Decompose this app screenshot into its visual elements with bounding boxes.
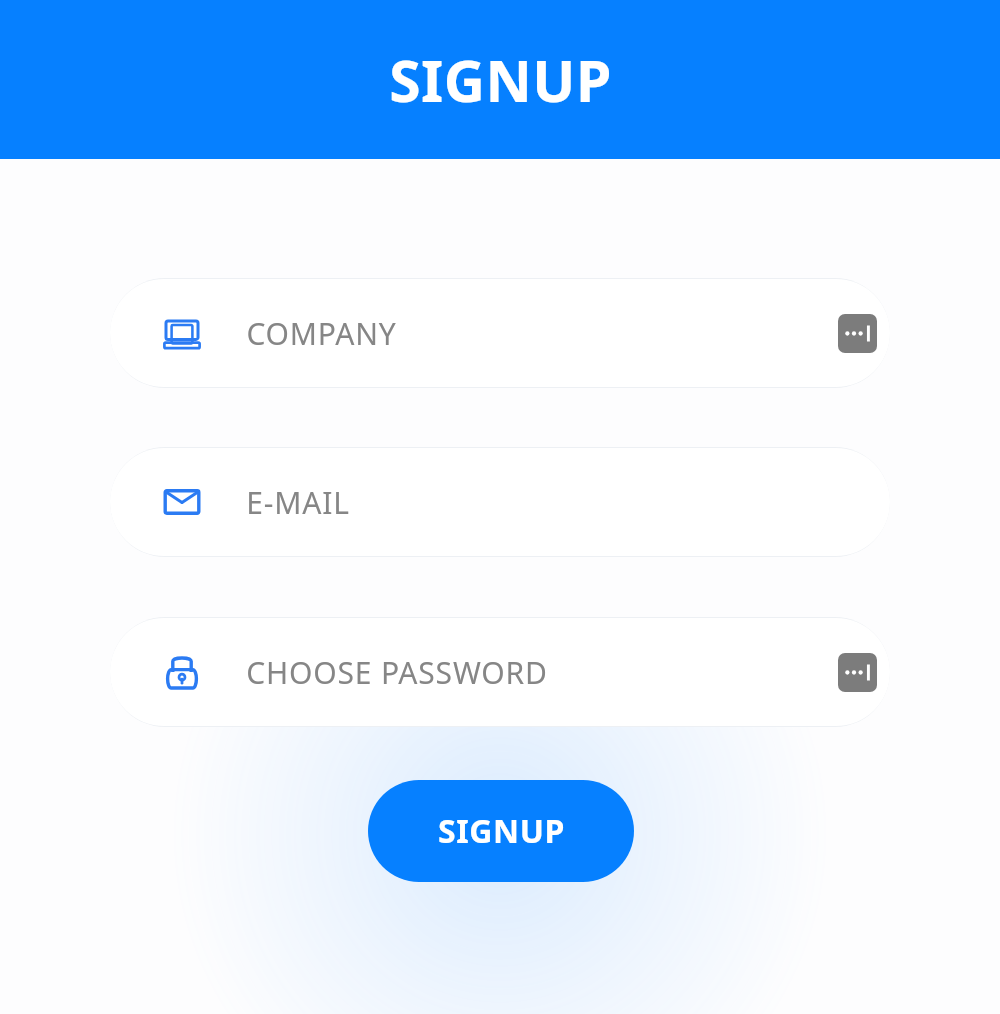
- staticText: E-MAIL: [246, 482, 350, 523]
- button[interactable]: E-MAIL: [110, 448, 890, 556]
- staticText: SIGNUP: [438, 809, 565, 853]
- button[interactable]: Show input: [838, 314, 877, 353]
- staticText: CHOOSE PASSWORD: [246, 652, 548, 693]
- staticText: SIGNUP: [389, 41, 612, 119]
- button[interactable]: Show input: [838, 653, 877, 692]
- button[interactable]: CHOOSE PASSWORD: [110, 618, 890, 726]
- button[interactable]: SIGNUP: [368, 780, 634, 882]
- button[interactable]: COMPANY: [110, 279, 890, 387]
- staticText: COMPANY: [246, 313, 397, 354]
